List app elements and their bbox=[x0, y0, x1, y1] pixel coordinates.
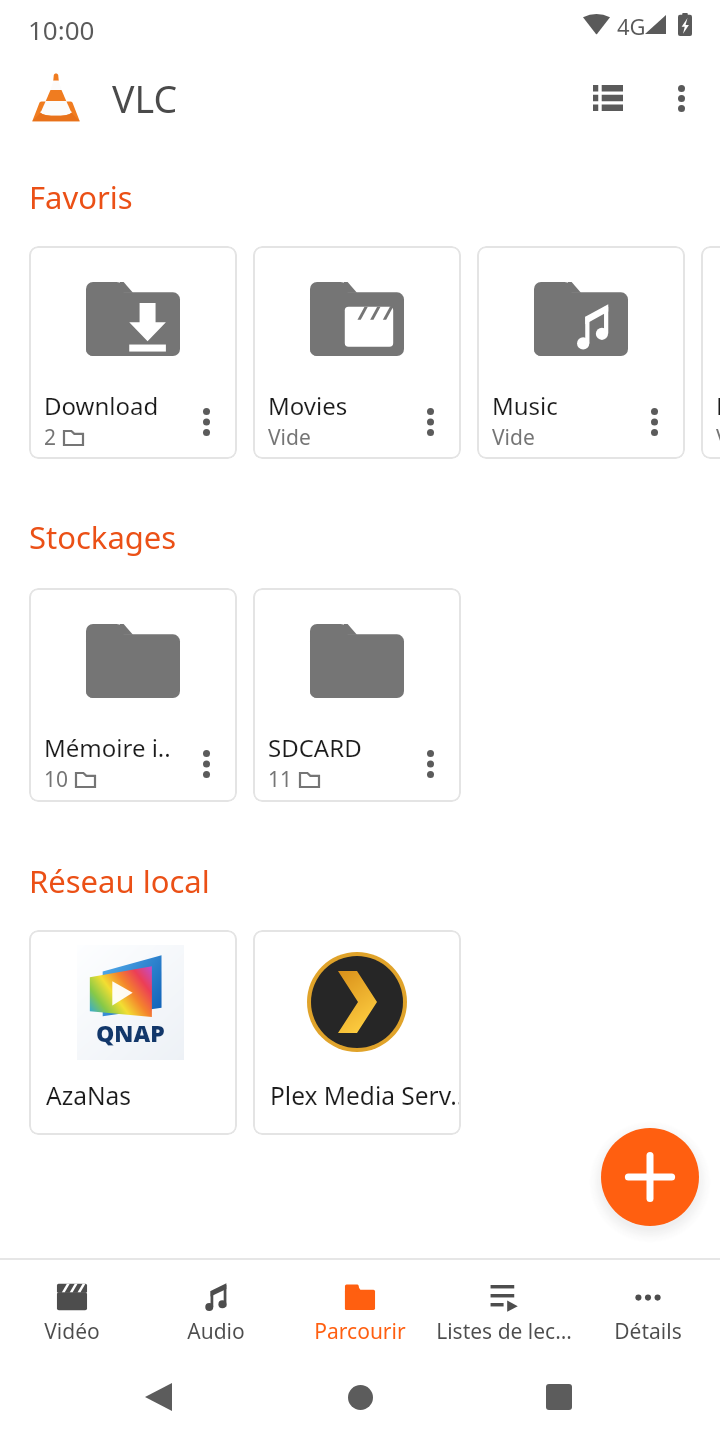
staticText: Pictures bbox=[716, 389, 720, 422]
staticText: 10 bbox=[44, 765, 69, 794]
button[interactable]: QNAP bbox=[29, 930, 237, 1135]
button[interactable]: Music bbox=[477, 246, 685, 459]
staticText: Parcourir bbox=[314, 1317, 406, 1346]
staticText: Favoris bbox=[29, 176, 133, 218]
button[interactable]: Détails bbox=[576, 1260, 720, 1360]
staticText: Détails bbox=[614, 1317, 682, 1346]
staticText: Listes de lec… bbox=[436, 1317, 572, 1346]
staticText: Download bbox=[44, 389, 159, 422]
staticText: 2 bbox=[44, 423, 57, 452]
button[interactable]: Listes de lec… bbox=[432, 1260, 576, 1360]
button[interactable]: More options bbox=[641, 58, 720, 138]
button[interactable]: Home bbox=[320, 1357, 400, 1437]
button[interactable]: Recents bbox=[519, 1357, 599, 1437]
staticText: AzaNas bbox=[46, 1079, 132, 1112]
staticText: Audio bbox=[187, 1317, 245, 1346]
button[interactable]: Mémoire i.. bbox=[29, 588, 237, 802]
button[interactable]: Vidéo bbox=[0, 1260, 144, 1360]
button[interactable]: Audio bbox=[144, 1260, 288, 1360]
button[interactable]: More options bbox=[402, 735, 459, 792]
button[interactable]: Download bbox=[29, 246, 237, 459]
button[interactable]: More options bbox=[626, 393, 683, 450]
staticText: VLC bbox=[112, 73, 178, 124]
button[interactable]: SDCARD bbox=[253, 588, 461, 802]
staticText: Réseau local bbox=[29, 860, 210, 902]
staticText: Vide bbox=[716, 423, 720, 452]
button[interactable]: Parcourir bbox=[288, 1260, 432, 1360]
staticText: Plex Media Serv.. bbox=[270, 1079, 461, 1112]
staticText: Movies bbox=[268, 389, 348, 422]
button[interactable]: Add bbox=[601, 1128, 699, 1226]
staticText: Vide bbox=[492, 423, 535, 452]
staticText: Music bbox=[492, 389, 558, 422]
staticText: Vide bbox=[268, 423, 311, 452]
staticText: QNAP bbox=[96, 1017, 165, 1048]
staticText: SDCARD bbox=[268, 731, 362, 764]
staticText: Stockages bbox=[29, 516, 177, 558]
button[interactable]: More options bbox=[178, 393, 235, 450]
button[interactable]: Plex Media Serv.. bbox=[253, 930, 461, 1135]
button[interactable]: More options bbox=[402, 393, 459, 450]
staticText: Mémoire i.. bbox=[44, 731, 171, 764]
staticText: 11 bbox=[268, 765, 293, 794]
button[interactable]: Pictures bbox=[701, 246, 720, 459]
staticText: 10:00 bbox=[28, 12, 95, 47]
staticText: 4G bbox=[617, 11, 646, 41]
button[interactable]: Movies bbox=[253, 246, 461, 459]
button[interactable]: Back bbox=[118, 1357, 198, 1437]
staticText: Vidéo bbox=[44, 1317, 100, 1346]
button[interactable]: More options bbox=[178, 735, 235, 792]
button[interactable]: List view bbox=[568, 58, 648, 138]
